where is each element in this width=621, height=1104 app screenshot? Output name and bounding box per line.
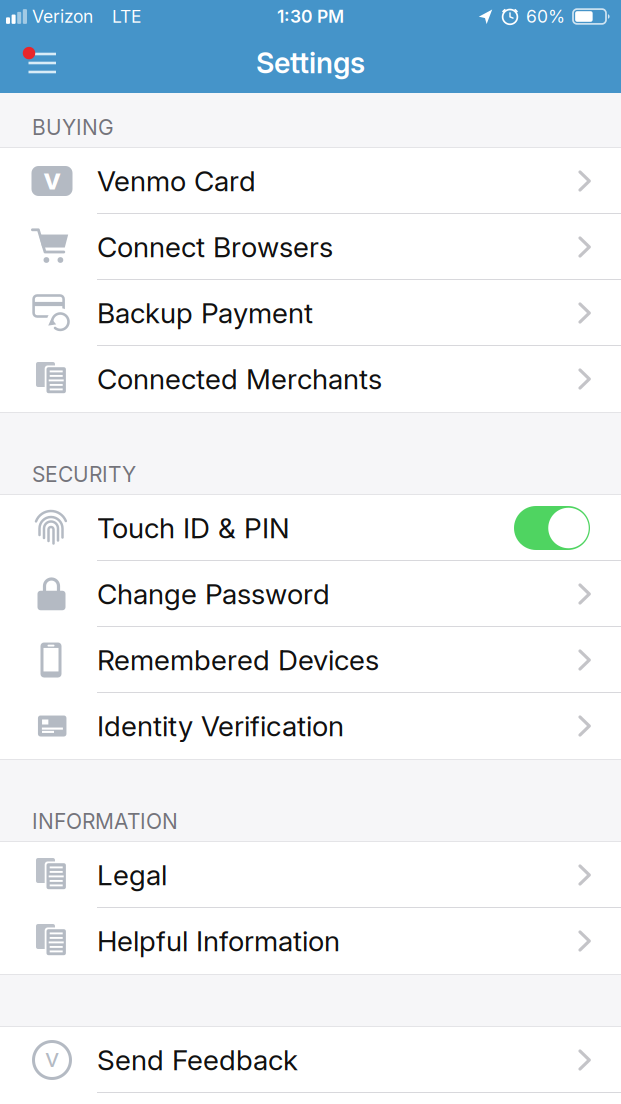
staticText: Legal bbox=[97, 858, 167, 892]
button[interactable]: Connect Browsers bbox=[0, 214, 621, 280]
staticText: INFORMATION bbox=[32, 809, 178, 834]
button[interactable]: v bbox=[0, 1027, 621, 1093]
staticText: SECURITY bbox=[32, 462, 136, 487]
staticText: Verizon bbox=[32, 6, 93, 27]
button[interactable]: Connected Merchants bbox=[0, 346, 621, 412]
staticText: LTE bbox=[112, 6, 142, 27]
button[interactable]: Change Password bbox=[0, 561, 621, 627]
button[interactable]: Touch ID & PIN bbox=[0, 495, 621, 561]
button[interactable]: Legal bbox=[0, 842, 621, 908]
staticText: Venmo Card bbox=[97, 164, 256, 198]
staticText: v bbox=[45, 1042, 59, 1073]
staticText: Remembered Devices bbox=[97, 643, 379, 677]
staticText: Identity Verification bbox=[97, 709, 344, 743]
staticText: Helpful Information bbox=[97, 924, 340, 958]
staticText: Connect Browsers bbox=[97, 230, 333, 264]
button[interactable]: Menu bbox=[28, 50, 57, 75]
staticText: Change Password bbox=[97, 577, 330, 611]
button[interactable]: v bbox=[0, 148, 621, 214]
staticText: BUYING bbox=[32, 115, 114, 140]
button[interactable]: Remembered Devices bbox=[0, 627, 621, 693]
button[interactable]: Helpful Information bbox=[0, 908, 621, 974]
staticText: Touch ID & PIN bbox=[97, 511, 290, 545]
button[interactable]: Identity Verification bbox=[0, 693, 621, 759]
staticText: 60% bbox=[526, 6, 565, 27]
staticText: Settings bbox=[256, 46, 365, 80]
staticText: Backup Payment bbox=[97, 296, 313, 330]
staticText: Send Feedback bbox=[97, 1043, 298, 1077]
staticText: 1:30 PM bbox=[277, 6, 344, 27]
staticText: v bbox=[43, 160, 60, 197]
button[interactable]: Backup Payment bbox=[0, 280, 621, 346]
staticText: Connected Merchants bbox=[97, 362, 382, 396]
